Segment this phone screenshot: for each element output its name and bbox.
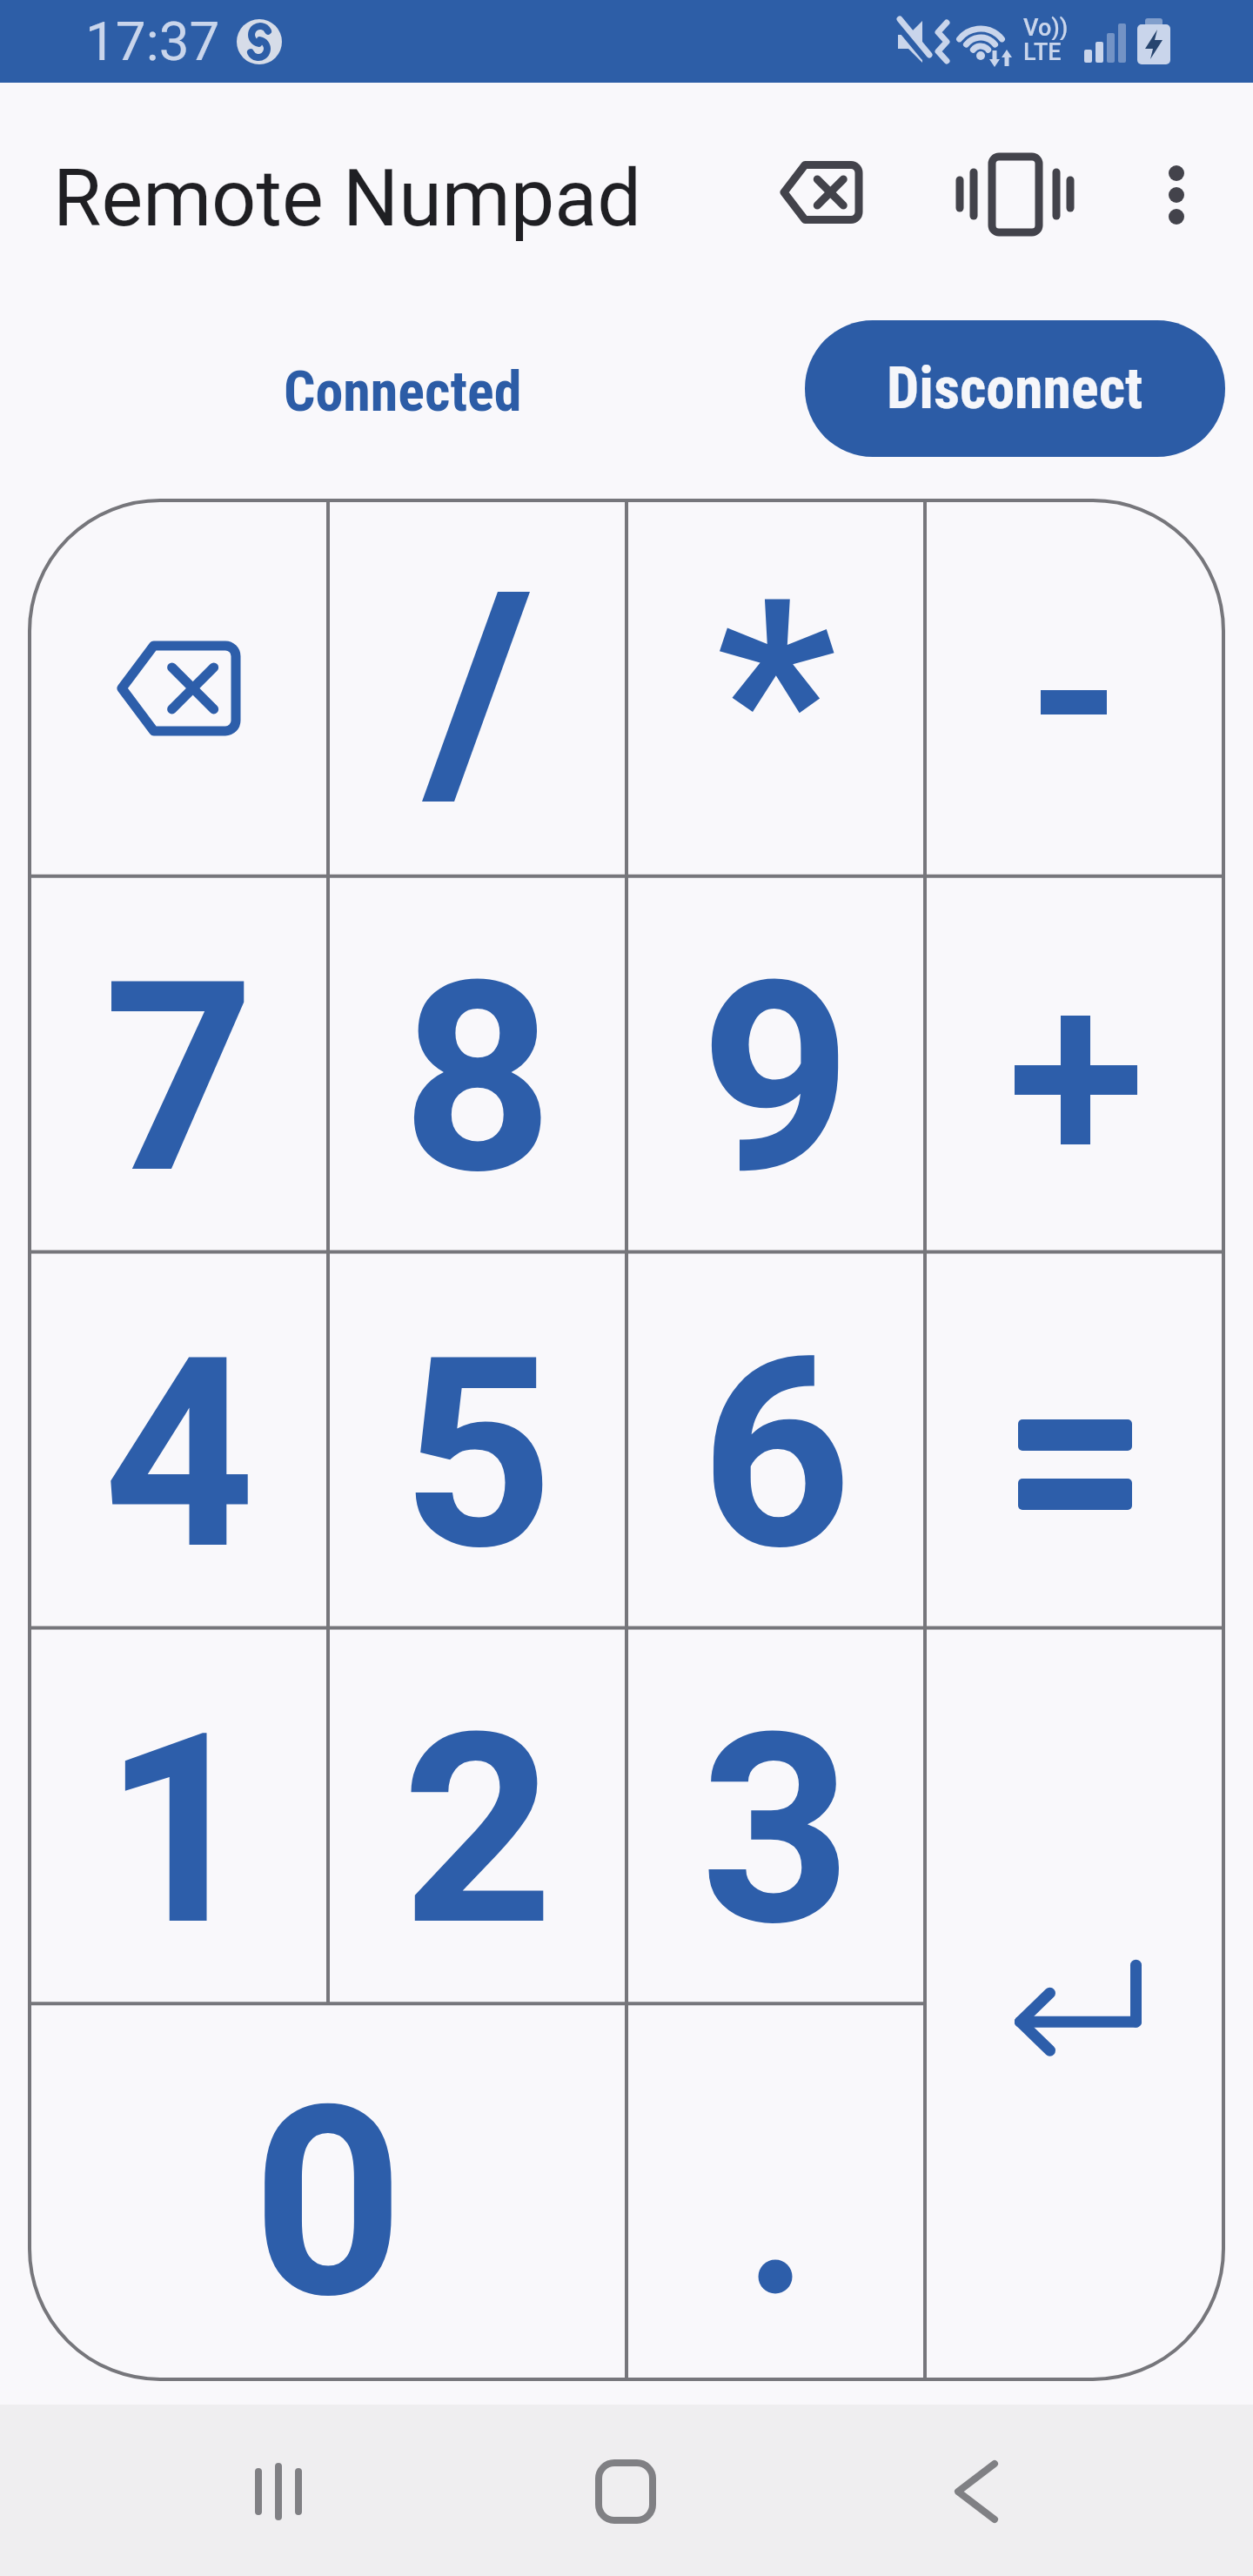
button[interactable] <box>925 500 1223 875</box>
staticText: 6 <box>700 1300 852 1609</box>
button[interactable] <box>626 2003 925 2378</box>
staticText: 17:37 <box>85 10 220 73</box>
button[interactable] <box>564 2431 686 2553</box>
button[interactable] <box>948 129 1077 258</box>
button[interactable] <box>757 129 886 258</box>
button[interactable] <box>1114 129 1239 258</box>
button[interactable]: 3 <box>626 1627 925 2002</box>
staticText: 9 <box>700 924 852 1233</box>
button[interactable]: 6 <box>626 1251 925 1627</box>
button[interactable]: 7 <box>30 875 328 1251</box>
staticText: Disconnect <box>887 355 1143 422</box>
button[interactable] <box>914 2431 1035 2553</box>
button[interactable] <box>925 875 1223 1251</box>
button[interactable]: 9 <box>626 875 925 1251</box>
button[interactable]: 5 <box>328 1251 626 1627</box>
button[interactable] <box>218 2431 339 2553</box>
button[interactable]: 1 <box>30 1627 328 2002</box>
staticText: Vo)) <box>1023 14 1069 40</box>
staticText: 0 <box>252 2049 404 2358</box>
button[interactable] <box>925 1251 1223 1627</box>
button[interactable] <box>30 500 328 875</box>
button[interactable]: Disconnect <box>805 320 1225 457</box>
staticText: Remote Numpad <box>53 153 641 245</box>
staticText: 8 <box>402 924 553 1233</box>
staticText: 4 <box>104 1300 255 1609</box>
staticText: Connected <box>284 359 522 425</box>
button[interactable]: 2 <box>328 1627 626 2002</box>
button[interactable]: 0 <box>30 2003 626 2378</box>
button[interactable]: * <box>626 500 925 875</box>
staticText: 2 <box>402 1676 553 1985</box>
button[interactable]: 4 <box>30 1251 328 1627</box>
staticText: 3 <box>700 1676 852 1985</box>
staticText: LTE <box>1023 38 1062 64</box>
staticText: 5 <box>402 1300 553 1609</box>
button[interactable] <box>328 500 626 875</box>
staticText: 1 <box>104 1676 255 1985</box>
staticText: * <box>716 542 836 851</box>
staticText: 7 <box>104 924 255 1233</box>
button[interactable] <box>925 1627 1223 2378</box>
button[interactable]: 8 <box>328 875 626 1251</box>
